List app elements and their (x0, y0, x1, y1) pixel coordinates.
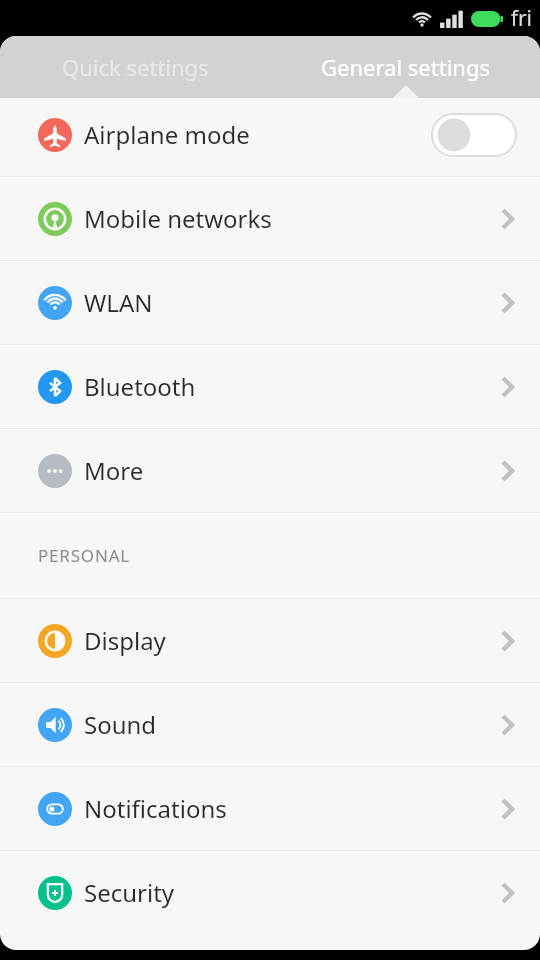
staticText: Quick settings (62, 52, 209, 82)
button[interactable]: Sound (0, 683, 540, 766)
staticText: fri (510, 4, 532, 33)
button[interactable]: Bluetooth (0, 345, 540, 428)
staticText: Airplane mode (84, 118, 250, 151)
button[interactable]: Display (0, 599, 540, 682)
staticText: Sound (84, 708, 157, 741)
staticText: Security (84, 876, 175, 909)
staticText: PERSONAL (38, 544, 131, 567)
button[interactable]: Mobile networks (0, 177, 540, 260)
button[interactable]: More (0, 429, 540, 512)
button[interactable]: Airplane mode (0, 93, 540, 176)
button[interactable]: General settings (270, 36, 540, 98)
staticText: Notifications (84, 792, 227, 825)
staticText: General settings (321, 52, 490, 82)
button[interactable]: Airplane mode toggle (432, 114, 516, 156)
staticText: Bluetooth (84, 370, 196, 403)
staticText: Mobile networks (84, 202, 272, 235)
button[interactable]: Notifications (0, 767, 540, 850)
button[interactable]: Security (0, 851, 540, 934)
button[interactable]: Quick settings (0, 36, 270, 98)
staticText: More (84, 454, 144, 487)
staticText: Display (84, 624, 166, 657)
staticText: WLAN (84, 286, 153, 319)
button[interactable]: WLAN (0, 261, 540, 344)
